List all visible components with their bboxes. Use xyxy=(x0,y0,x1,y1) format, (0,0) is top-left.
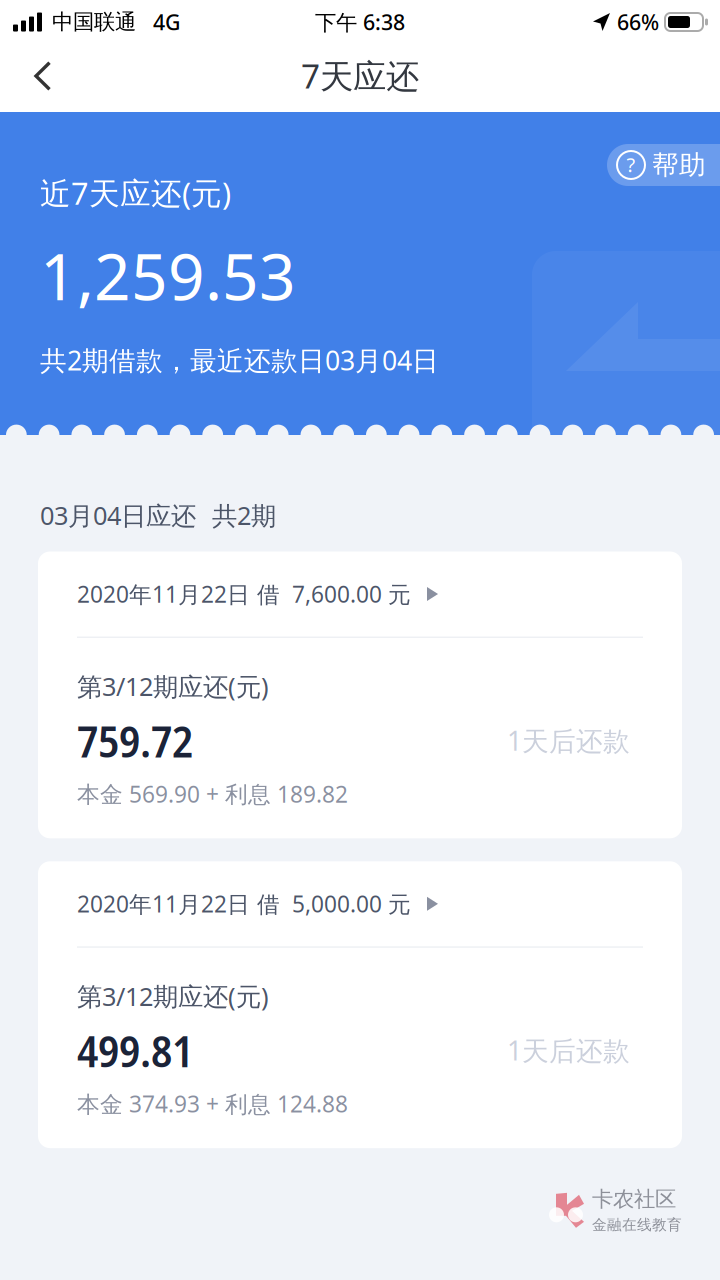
staticText: 03月04日应还 共2期 xyxy=(40,498,276,532)
staticText: 帮助 xyxy=(652,148,706,182)
staticText: 本金 374.93 + 利息 124.88 xyxy=(77,1088,348,1119)
staticText: 本金 569.90 + 利息 189.82 xyxy=(77,778,348,809)
staticText: 1天后还款 xyxy=(507,722,630,759)
staticText: 66% xyxy=(617,7,659,37)
staticText: 金融在线教育 xyxy=(592,1215,682,1234)
button[interactable]: 2020年11月22日 借 7,600.00 元 xyxy=(38,551,682,636)
button[interactable]: ? xyxy=(607,144,720,186)
staticText: 中国联通 xyxy=(52,9,136,35)
staticText: 759.72 xyxy=(77,710,193,770)
staticText: ? xyxy=(626,151,635,178)
staticText: 2020年11月22日 借 5,000.00 元 xyxy=(77,888,411,919)
staticText: 第3/12期应还(元) xyxy=(77,979,269,1013)
staticText: 下午 6:38 xyxy=(315,7,405,37)
staticText: 1,259.53 xyxy=(40,232,296,319)
staticText: 7天应还 xyxy=(301,53,419,98)
staticText: 4G xyxy=(153,7,181,37)
staticText: 共2期借款，最近还款日03月04日 xyxy=(40,342,439,378)
staticText: 近7天应还(元) xyxy=(40,172,231,214)
staticText: 第3/12期应还(元) xyxy=(77,669,269,703)
button[interactable]: 2020年11月22日 借 5,000.00 元 xyxy=(38,861,682,946)
staticText: 1天后还款 xyxy=(507,1032,630,1068)
staticText: 2020年11月22日 借 7,600.00 元 xyxy=(77,579,411,609)
staticText: 卡农社区 xyxy=(592,1186,676,1212)
staticText: 499.81 xyxy=(77,1020,193,1080)
button[interactable]: Back xyxy=(0,44,75,112)
